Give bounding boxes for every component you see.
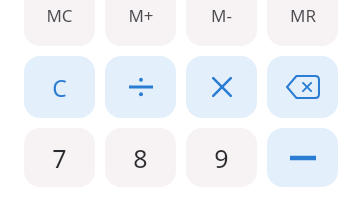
button[interactable]: MR — [267, 0, 338, 46]
button[interactable]: Divide — [105, 56, 176, 118]
button[interactable]: Minus — [267, 128, 338, 187]
button[interactable]: 9 — [186, 128, 257, 187]
button[interactable]: C — [24, 56, 95, 118]
staticText: M+ — [128, 4, 154, 27]
staticText: MC — [46, 4, 73, 27]
button[interactable]: MC — [24, 0, 95, 46]
staticText: MR — [290, 4, 316, 27]
staticText: 7 — [52, 141, 67, 175]
staticText: 9 — [214, 141, 229, 175]
button[interactable]: M+ — [105, 0, 176, 46]
button[interactable]: 8 — [105, 128, 176, 187]
staticText: 8 — [133, 141, 148, 175]
button[interactable]: 7 — [24, 128, 95, 187]
staticText: M- — [211, 4, 232, 27]
button[interactable]: Multiply — [186, 56, 257, 118]
button[interactable]: Backspace — [267, 56, 338, 118]
staticText: C — [52, 72, 67, 103]
button[interactable]: M- — [186, 0, 257, 46]
